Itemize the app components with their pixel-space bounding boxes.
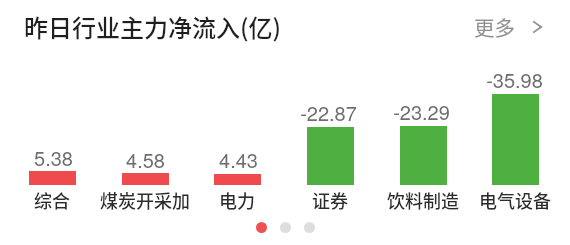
staticText: 煤炭开采加 (100, 187, 190, 213)
staticText: 电力 (219, 187, 255, 213)
button[interactable] (256, 222, 267, 233)
button[interactable] (280, 222, 291, 233)
staticText: 饮料制造 (387, 187, 459, 213)
staticText: 4.43 (219, 145, 258, 174)
staticText: -22.87 (300, 98, 357, 127)
staticText: 证券 (312, 187, 348, 213)
staticText: 综合 (34, 187, 70, 213)
staticText: 4.58 (126, 145, 165, 174)
button[interactable]: 综合 5.38 (6, 58, 99, 210)
button[interactable]: 煤炭开采加 4.58 (99, 58, 192, 210)
button[interactable]: 证券 -22.87 (284, 58, 377, 210)
button[interactable]: 电气设备 -35.98 (469, 58, 562, 210)
button[interactable]: 更多 (458, 0, 564, 52)
staticText: -23.29 (393, 97, 450, 126)
staticText: 昨日行业主力净流入(亿) (24, 9, 282, 44)
button[interactable]: 电力 4.43 (191, 58, 284, 210)
other: 第 1 页，共 3 页 (256, 222, 315, 233)
button[interactable] (304, 222, 315, 233)
staticText: 电气设备 (479, 187, 551, 213)
button[interactable]: 饮料制造 -23.29 (377, 58, 470, 210)
staticText: 5.38 (34, 143, 73, 172)
staticText: 更多 (474, 12, 515, 42)
staticText: -35.98 (486, 65, 543, 94)
